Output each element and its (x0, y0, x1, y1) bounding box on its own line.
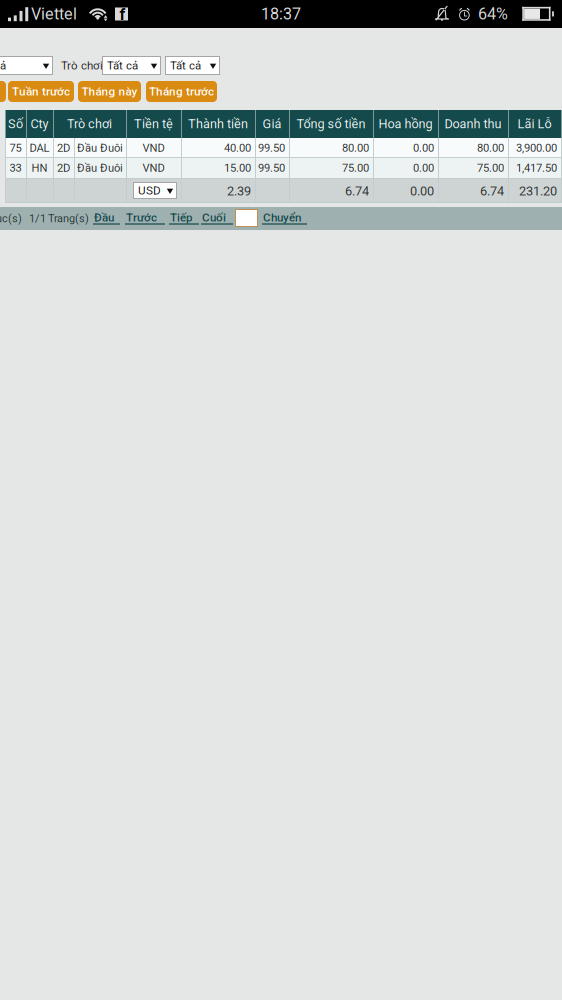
staticText: Tiếp (170, 211, 193, 224)
staticText: 75 (9, 141, 21, 154)
staticText: Tuần trước (12, 85, 70, 98)
staticText: USD (138, 184, 161, 197)
staticText: Cuối (202, 211, 226, 224)
staticText: 80.00 (477, 141, 504, 154)
staticText: 33 (9, 161, 21, 174)
button[interactable]: Chuyển (263, 211, 307, 226)
button[interactable]: Số trang (235, 209, 258, 227)
staticText: Cty (30, 117, 48, 131)
staticText: Tháng này (81, 85, 137, 98)
staticText: Tiền tệ (134, 117, 173, 131)
button[interactable]: Cuối (202, 211, 233, 226)
staticText: Đầu Đuôi (77, 141, 123, 154)
staticText: Hoa hồng (378, 117, 432, 131)
staticText: HN (31, 161, 47, 174)
staticText: 80.00 (342, 141, 369, 154)
staticText: Đầu Đuôi (77, 161, 123, 174)
staticText: 0.00 (410, 183, 434, 198)
button[interactable]: cả (0, 56, 53, 75)
staticText: Trước (126, 211, 157, 224)
staticText: 75.00 (342, 161, 369, 174)
staticText: Tất cả (170, 59, 201, 72)
button[interactable]: Trước (126, 211, 165, 226)
staticText: Tất cả (107, 59, 138, 72)
staticText: VND (142, 161, 164, 174)
staticText: 3,900.00 (516, 141, 557, 154)
button[interactable]: Tuần trước (8, 81, 74, 102)
button[interactable]: Đầu (94, 211, 120, 226)
staticText: Tháng trước (149, 85, 214, 98)
button[interactable]: Tiếp (170, 211, 199, 226)
staticText: 64% (478, 4, 508, 23)
button[interactable]: Tất cả (165, 56, 220, 75)
staticText: 0.00 (413, 141, 434, 154)
staticText: Đầu (94, 211, 114, 224)
staticText: Lãi Lỗ (517, 117, 551, 131)
staticText: Giá (262, 117, 281, 131)
staticText: Chuyển (263, 211, 301, 224)
staticText: Trò chơi (61, 59, 103, 72)
staticText: 2.39 (227, 183, 251, 198)
button[interactable]: USD (133, 182, 177, 199)
staticText: Doanh thu (444, 117, 501, 131)
staticText: 99.50 (258, 161, 285, 174)
staticText: Trò chơi (67, 117, 112, 131)
staticText: 15.00 (224, 161, 251, 174)
button[interactable]: Tháng này (78, 81, 141, 102)
staticText: 1,417.50 (516, 161, 557, 174)
staticText: 231.20 (519, 183, 557, 198)
staticText: DAL (29, 141, 49, 154)
staticText: Thành tiền (188, 117, 248, 131)
staticText: 18:37 (261, 4, 301, 23)
button[interactable]: c (0, 81, 6, 102)
staticText: 75.00 (477, 161, 504, 174)
staticText: 2D (57, 161, 70, 174)
staticText: VND (142, 141, 164, 154)
staticText: Số (8, 117, 23, 131)
staticText: Tổng số tiền (296, 117, 365, 131)
staticText: 6.74 (345, 183, 369, 198)
staticText: 6.74 (480, 183, 504, 198)
button[interactable]: Tất cả (102, 56, 161, 75)
staticText: 1/1 Trang(s) (29, 212, 89, 225)
staticText: ục(s) (0, 212, 22, 225)
staticText: 0.00 (413, 161, 434, 174)
staticText: 2D (57, 141, 70, 154)
staticText: 40.00 (224, 141, 251, 154)
staticText: f (120, 5, 126, 24)
staticText: cả (0, 59, 6, 72)
staticText: Viettel (31, 4, 77, 23)
button[interactable]: Tháng trước (146, 81, 217, 102)
staticText: 99.50 (258, 141, 285, 154)
